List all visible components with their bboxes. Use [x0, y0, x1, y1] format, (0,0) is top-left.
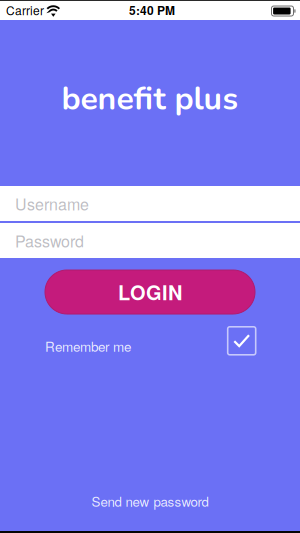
- staticText: Carrier: [6, 1, 44, 19]
- button[interactable]: Send new password: [0, 488, 300, 514]
- button[interactable]: Remember me: [45, 338, 155, 354]
- button[interactable]: Remember me: [228, 327, 256, 355]
- staticText: Send new password: [91, 491, 208, 511]
- button[interactable]: Username: [0, 186, 300, 221]
- staticText: 5:40 PM: [129, 1, 175, 19]
- staticText: LOGIN: [118, 278, 182, 306]
- staticText: Remember me: [45, 336, 131, 356]
- button[interactable]: LOGIN: [45, 270, 255, 314]
- staticText: Username: [15, 192, 89, 215]
- button[interactable]: Password: [0, 223, 300, 258]
- staticText: Password: [15, 229, 84, 252]
- staticText: benefit plus: [61, 77, 238, 121]
